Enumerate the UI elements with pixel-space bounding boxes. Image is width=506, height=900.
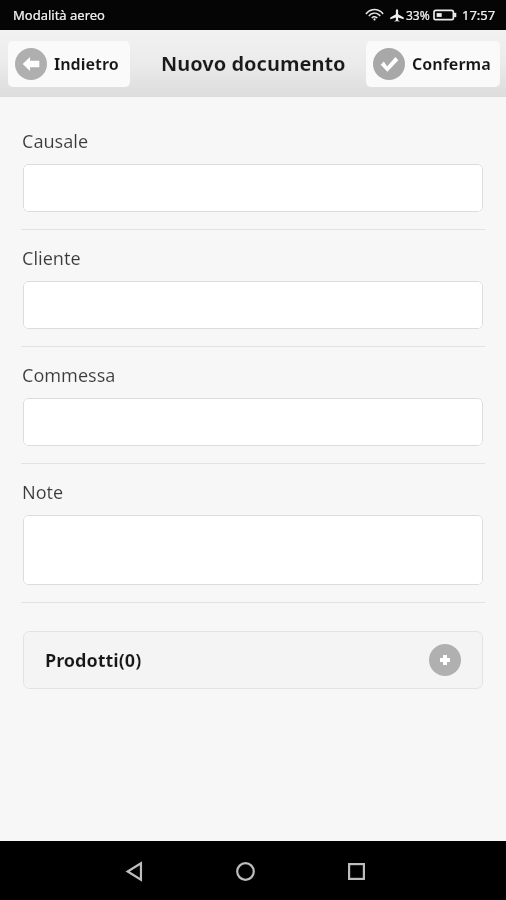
staticText: Note (22, 480, 64, 505)
button[interactable]: Recenti (334, 849, 378, 893)
button[interactable]: Indietro (112, 849, 156, 893)
button[interactable] (23, 398, 483, 446)
staticText: Indietro (54, 53, 119, 75)
button[interactable]: Home (223, 849, 267, 893)
staticText: Causale (22, 129, 89, 154)
staticText: Prodotti(0) (45, 648, 142, 673)
staticText: 17:57 (462, 6, 496, 24)
staticText: Commessa (22, 363, 116, 388)
button[interactable]: Prodotti(0) (23, 631, 483, 689)
button[interactable] (23, 515, 483, 585)
button[interactable]: Conferma (366, 41, 500, 87)
staticText: Nuovo documento (161, 50, 346, 77)
button[interactable]: Indietro (8, 41, 130, 87)
button[interactable] (23, 164, 483, 212)
staticText: Conferma (412, 53, 491, 75)
button[interactable]: Aggiungi prodotto (429, 644, 461, 676)
staticText: 33% (406, 7, 430, 23)
staticText: Modalità aereo (13, 6, 105, 24)
button[interactable] (23, 281, 483, 329)
staticText: Cliente (22, 246, 81, 271)
